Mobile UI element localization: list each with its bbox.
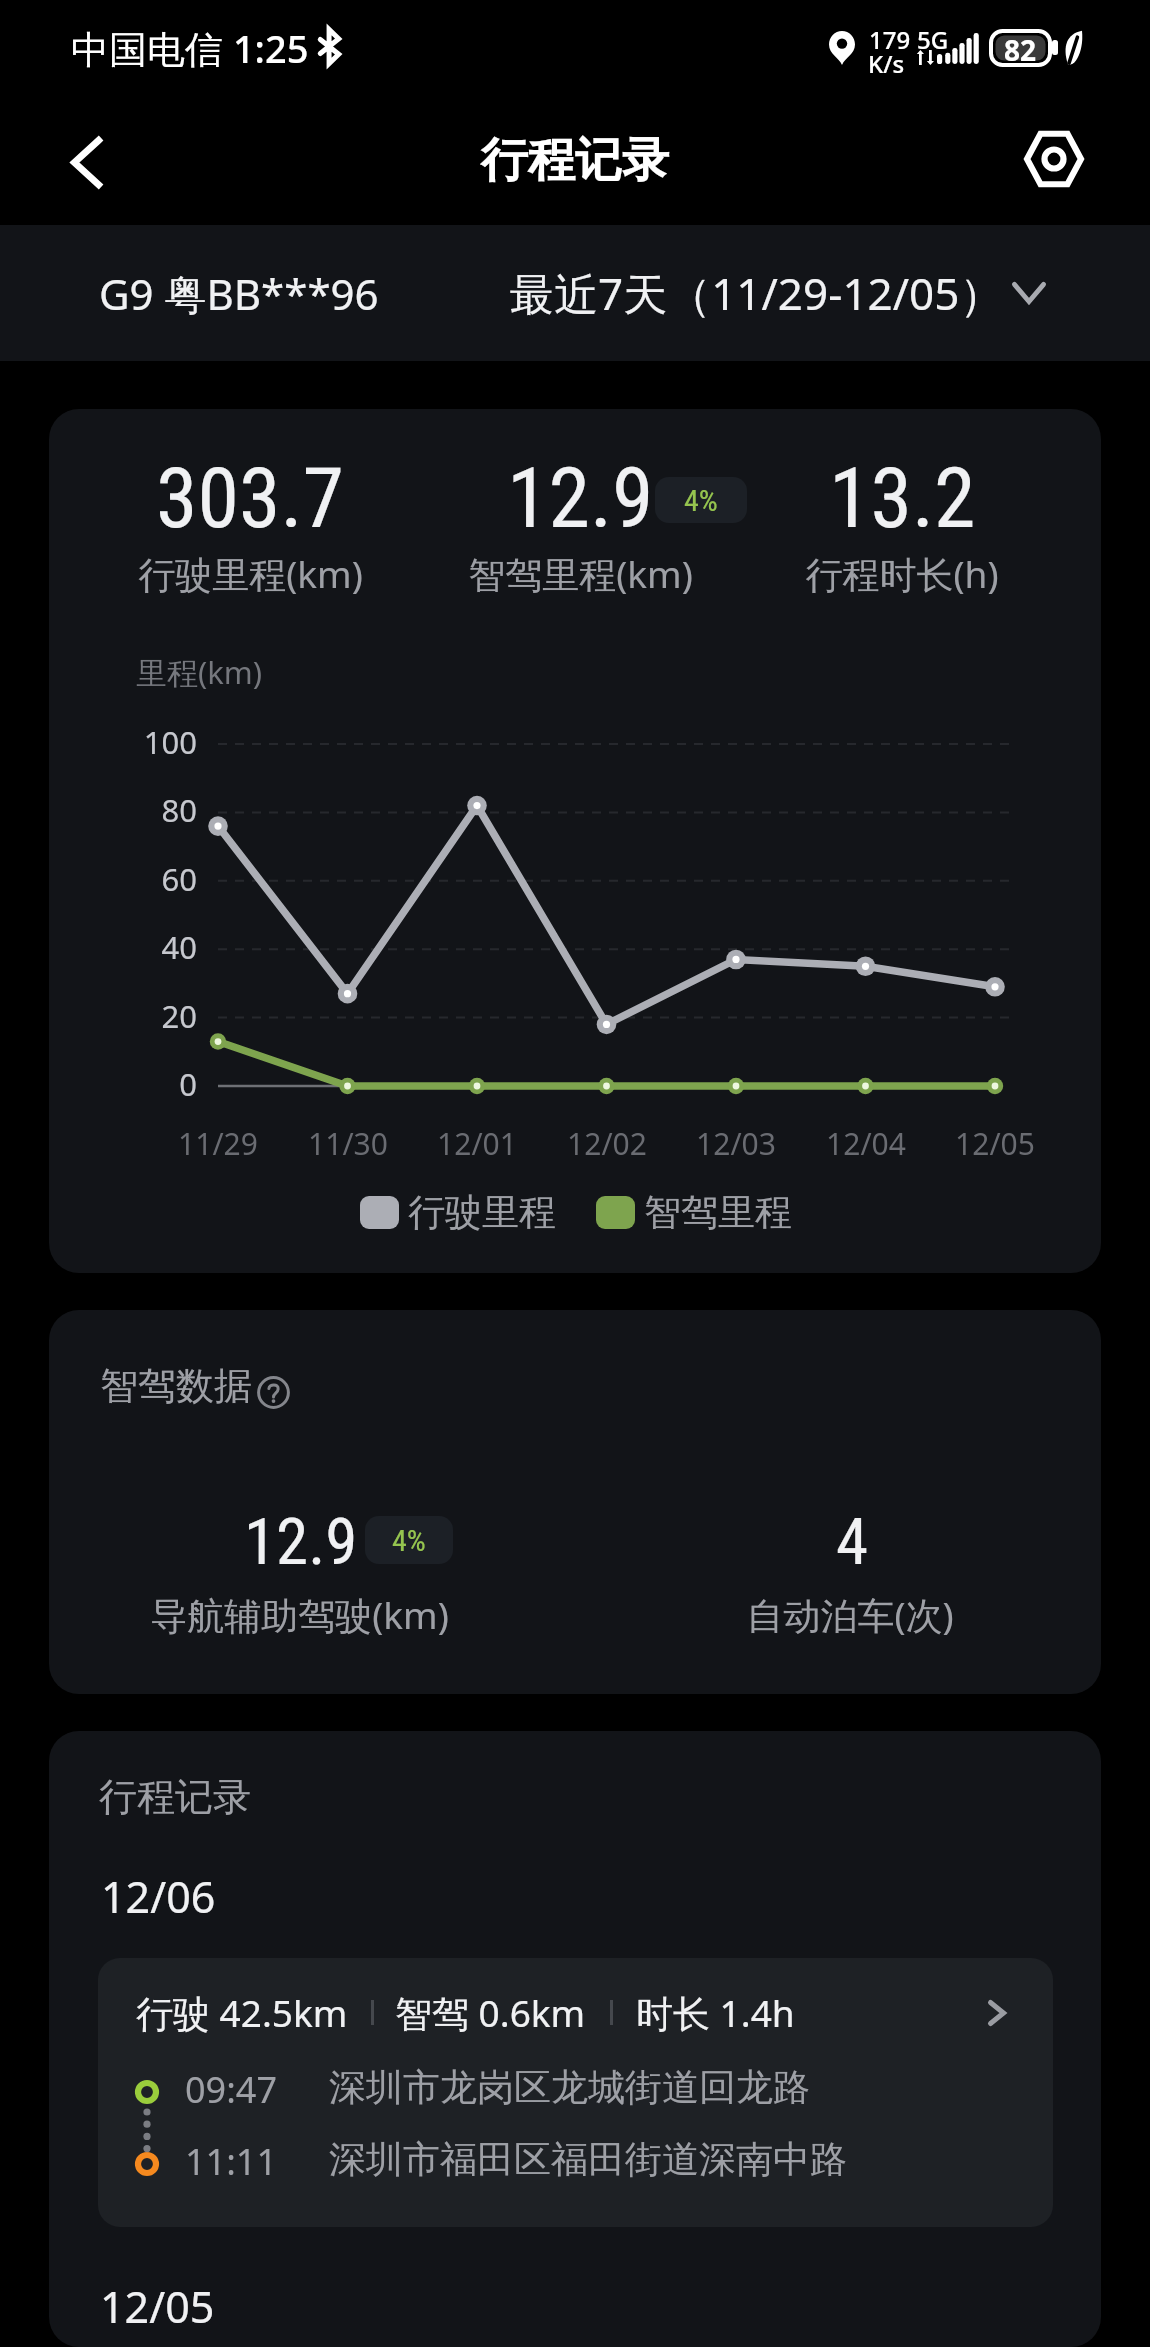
staticText: 12/06 <box>101 1867 216 1926</box>
staticText: 5G <box>917 23 949 56</box>
staticText: 深圳市龙岗区龙城街道回龙路 <box>329 2064 810 2111</box>
staticText: 导航辅助驾驶(km) <box>150 1589 449 1640</box>
staticText: 深圳市福田区福田街道深南中路 <box>329 2136 847 2183</box>
staticText: 行程时长(h) <box>805 548 999 599</box>
button[interactable]: Open trip detail <box>965 1981 1029 2045</box>
staticText: 80 <box>161 789 197 831</box>
staticText: K/s <box>868 47 905 80</box>
button[interactable]: 最近7天（11/29-12/05） <box>510 225 1046 361</box>
button[interactable]: 行驶 42.5km <box>98 1958 1053 2227</box>
staticText: 20 <box>161 995 197 1037</box>
staticText: 303.7 <box>156 449 345 547</box>
staticText: 智驾里程(km) <box>468 548 693 599</box>
staticText: 行程记录 <box>481 131 669 190</box>
staticText: 4% <box>684 483 718 518</box>
staticText: 行驶里程 <box>408 1189 556 1235</box>
button[interactable]: 行驶里程 <box>360 1189 556 1235</box>
staticText: 智驾 0.6km <box>395 1987 586 2038</box>
button[interactable]: 智驾里程 <box>596 1189 792 1235</box>
staticText: 13.2 <box>829 449 976 547</box>
staticText: 12/01 <box>437 1123 517 1164</box>
staticText: 中国电信 1:25 <box>71 22 309 74</box>
staticText: 12.9 <box>244 1504 358 1580</box>
staticText: 09:47 <box>185 2065 278 2114</box>
staticText: 12.9 <box>507 449 654 547</box>
staticText: 82 <box>1004 31 1037 65</box>
staticText: 40 <box>161 926 197 968</box>
button[interactable]: Settings <box>1000 105 1108 213</box>
staticText: 60 <box>161 858 197 900</box>
staticText: 12/05 <box>955 1123 1035 1164</box>
button[interactable]: Back <box>30 103 142 221</box>
staticText: 智驾里程 <box>644 1189 792 1235</box>
staticText: 时长 1.4h <box>636 1987 795 2038</box>
button[interactable]: G9 粤BB***96 <box>87 225 391 361</box>
staticText: 12/02 <box>567 1123 647 1164</box>
staticText: 12/03 <box>696 1123 776 1164</box>
staticText: 行驶 42.5km <box>136 1987 348 2038</box>
staticText: 自动泊车(次) <box>746 1589 954 1640</box>
staticText: 里程(km) <box>136 651 263 693</box>
staticText: G9 粤BB***96 <box>99 265 379 322</box>
staticText: 0 <box>179 1063 197 1105</box>
staticText: 11/29 <box>178 1123 258 1164</box>
staticText: 12/05 <box>100 2277 215 2336</box>
staticText: 100 <box>143 721 197 763</box>
staticText: 行程记录 <box>99 1773 251 1821</box>
staticText: 12/04 <box>826 1123 906 1164</box>
staticText: 11:11 <box>185 2137 278 2186</box>
staticText: 4 <box>836 1504 869 1580</box>
staticText: 179 <box>869 23 911 56</box>
staticText: 行驶里程(km) <box>138 548 363 599</box>
staticText: 4% <box>392 1523 426 1558</box>
staticText: 智驾数据 <box>100 1362 252 1410</box>
staticText: 11/30 <box>308 1123 388 1164</box>
button[interactable]: 智驾数据 <box>100 1362 290 1410</box>
staticText: 最近7天（11/29-12/05） <box>510 263 1004 323</box>
